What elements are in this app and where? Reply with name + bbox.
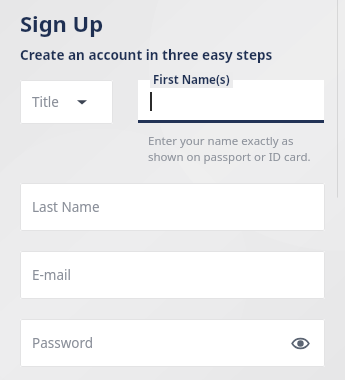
button[interactable] <box>138 80 324 123</box>
button[interactable]: E-mail <box>20 251 325 299</box>
staticText: Sign Up <box>20 8 104 38</box>
button[interactable]: Show password <box>287 330 313 356</box>
staticText: First Name(s) <box>153 72 230 88</box>
staticText: Password <box>32 334 94 352</box>
staticText: Last Name <box>32 198 100 216</box>
staticText: Enter your name exactly as shown on pass… <box>148 133 311 164</box>
staticText: Title <box>32 93 59 111</box>
button[interactable]: Password <box>20 319 325 367</box>
staticText: Create an account in three easy steps <box>20 46 273 64</box>
staticText: E-mail <box>32 266 72 284</box>
button[interactable]: Last Name <box>20 183 325 231</box>
button[interactable]: Title <box>20 80 113 124</box>
